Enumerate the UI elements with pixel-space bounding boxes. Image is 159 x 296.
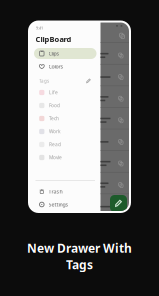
button[interactable]: Read: [34, 138, 96, 151]
button[interactable]: Clips: [34, 48, 96, 59]
staticText: Tags: [39, 78, 49, 84]
staticText: Settings: [49, 201, 69, 208]
staticText: Colors: [49, 63, 64, 70]
staticText: Tags: [66, 256, 93, 273]
button[interactable]: Trash: [34, 186, 96, 197]
staticText: New Drawer With: [27, 240, 132, 256]
button[interactable]: Food: [34, 99, 96, 112]
staticText: Tech: [49, 115, 59, 122]
button[interactable]: Tech: [34, 112, 96, 125]
button[interactable]: Settings: [34, 199, 96, 210]
button[interactable]: Edit tags: [84, 77, 92, 85]
staticText: Food: [49, 102, 60, 109]
staticText: Work: [49, 128, 61, 135]
staticText: Trash: [49, 188, 63, 195]
staticText: Read: [49, 141, 61, 148]
button[interactable]: Life: [34, 86, 96, 99]
button[interactable]: Movie: [34, 151, 96, 164]
staticText: ClipBoard: [35, 34, 71, 44]
button[interactable]: New clip: [110, 195, 127, 212]
button[interactable]: Colors: [34, 61, 96, 72]
staticText: 9:41: [36, 25, 43, 31]
button[interactable]: Work: [34, 125, 96, 138]
staticText: Clips: [49, 50, 60, 57]
staticText: Life: [49, 89, 58, 96]
staticText: Movie: [49, 154, 62, 161]
